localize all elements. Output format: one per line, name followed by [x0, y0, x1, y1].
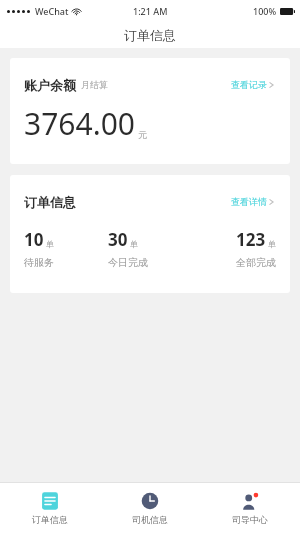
staticText: 全部完成: [236, 256, 276, 269]
button[interactable]: 查看记录: [229, 76, 276, 93]
button[interactable]: 查看详情: [229, 193, 276, 210]
staticText: 司导中心: [232, 514, 268, 525]
staticText: 待服务: [24, 256, 54, 269]
button[interactable]: 订单信息: [0, 486, 100, 531]
staticText: 订单信息: [124, 27, 176, 43]
staticText: 今日完成: [108, 256, 148, 269]
staticText: WeChat: [35, 5, 69, 17]
staticText: 10: [24, 228, 44, 251]
button[interactable]: 123: [192, 228, 276, 269]
button[interactable]: 司导中心: [200, 486, 300, 531]
staticText: 30: [108, 228, 128, 251]
button[interactable]: 30: [108, 228, 192, 269]
staticText: 查看记录: [231, 79, 267, 90]
staticText: 账户余额: [24, 77, 76, 93]
button[interactable]: 10: [24, 228, 108, 269]
staticText: 订单信息: [24, 194, 76, 210]
staticText: 3764.00: [24, 103, 135, 144]
staticText: 元: [138, 129, 147, 140]
other: 司机信息: [141, 492, 159, 510]
staticText: 单: [46, 239, 54, 249]
other: 司导中心: [241, 492, 259, 510]
staticText: 月结算: [81, 79, 108, 90]
staticText: 订单信息: [32, 514, 68, 525]
staticText: 查看详情: [231, 196, 267, 207]
staticText: 单: [268, 239, 276, 249]
staticText: 123: [236, 228, 266, 251]
staticText: 100%: [253, 5, 277, 17]
button[interactable]: 司机信息: [100, 486, 200, 531]
staticText: 单: [130, 239, 138, 249]
staticText: 司机信息: [132, 514, 168, 525]
other: 订单信息: [41, 492, 59, 510]
staticText: 1:21 AM: [133, 5, 168, 17]
